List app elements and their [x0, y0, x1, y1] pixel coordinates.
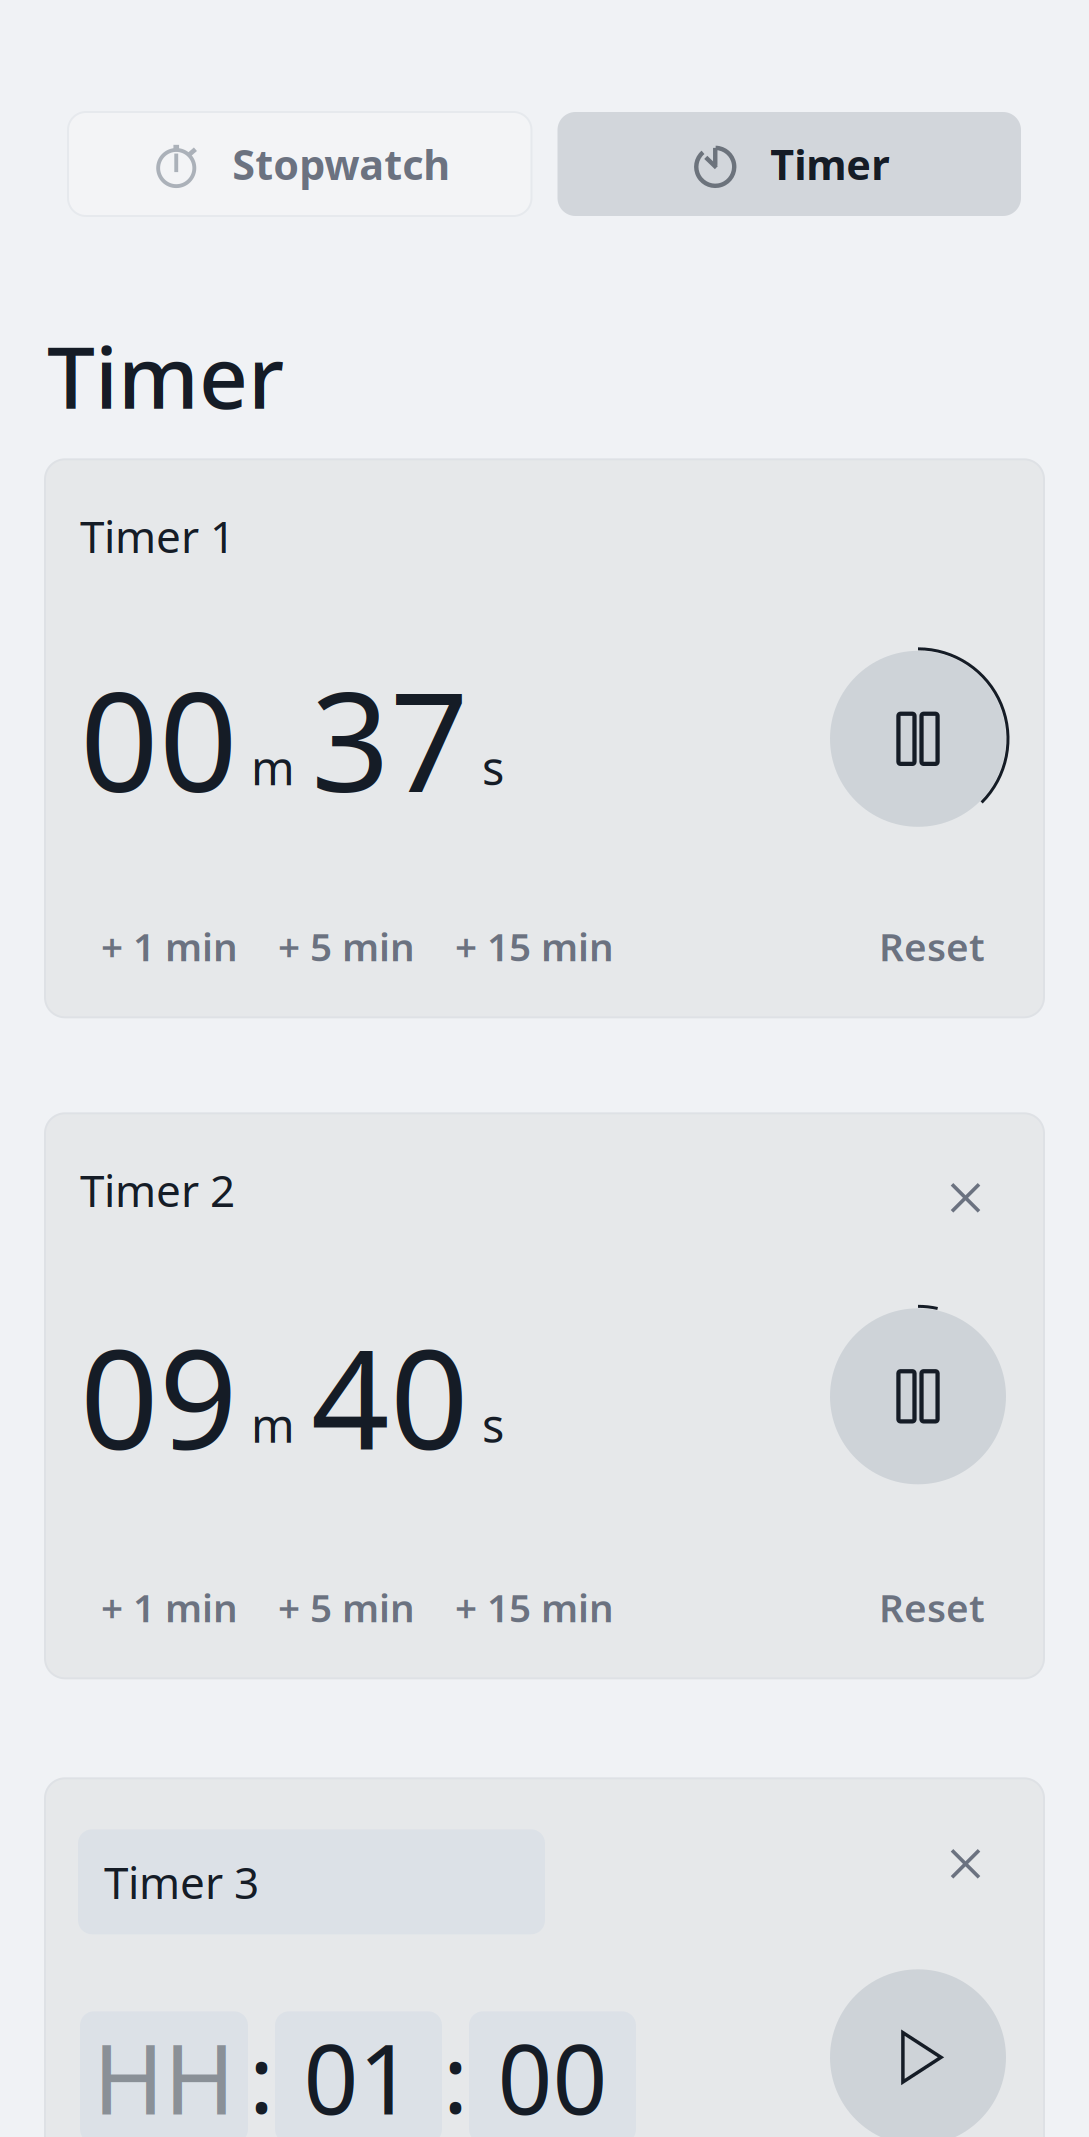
button[interactable]: + 15 min: [455, 1582, 614, 1633]
button[interactable]: + 1 min: [101, 1582, 238, 1633]
button[interactable]: Reset: [879, 1582, 985, 1633]
staticText: m: [251, 1393, 295, 1455]
button[interactable]: + 1 min: [101, 921, 238, 972]
button[interactable]: + 5 min: [278, 921, 415, 972]
button[interactable]: Stopwatch: [68, 112, 531, 216]
button[interactable]: Hours: [80, 2011, 248, 2137]
staticText: :: [443, 2015, 468, 2137]
staticText: Timer 1: [80, 507, 235, 565]
staticText: + 15 min: [455, 1582, 614, 1633]
button[interactable]: Delete timer: [940, 1838, 991, 1889]
staticText: + 1 min: [101, 921, 238, 972]
staticText: HH: [93, 2014, 235, 2137]
staticText: Reset: [879, 921, 985, 972]
staticText: Timer: [47, 319, 284, 432]
button[interactable]: Start timer: [825, 1964, 1011, 2137]
staticText: + 5 min: [278, 921, 415, 972]
button[interactable]: Timer: [557, 112, 1021, 216]
staticText: s: [482, 736, 504, 798]
staticText: s: [482, 1393, 504, 1455]
button[interactable]: + 5 min: [278, 1582, 415, 1633]
button[interactable]: 01: [275, 2011, 442, 2137]
button[interactable]: Pause timer: [825, 646, 1011, 832]
button[interactable]: 00: [469, 2011, 636, 2137]
staticText: m: [251, 736, 295, 798]
staticText: 00: [80, 648, 238, 830]
staticText: 40: [311, 1305, 469, 1487]
staticText: 37: [311, 648, 469, 830]
staticText: :: [249, 2015, 274, 2137]
button[interactable]: Reset: [879, 921, 985, 972]
staticText: Timer 3: [104, 1853, 259, 1911]
staticText: + 5 min: [278, 1582, 415, 1633]
staticText: + 15 min: [455, 921, 614, 972]
button[interactable]: + 15 min: [455, 921, 614, 972]
staticText: 09: [80, 1305, 238, 1487]
button[interactable]: Delete timer: [940, 1172, 991, 1223]
staticText: Reset: [879, 1582, 985, 1633]
staticText: 01: [303, 2014, 413, 2137]
button[interactable]: Timer 3: [78, 1829, 545, 1934]
staticText: Timer 2: [80, 1161, 235, 1219]
staticText: Stopwatch: [232, 137, 450, 191]
staticText: Timer: [770, 137, 889, 191]
button[interactable]: Pause timer: [825, 1303, 1011, 1489]
staticText: 00: [497, 2014, 607, 2137]
staticText: + 1 min: [101, 1582, 238, 1633]
